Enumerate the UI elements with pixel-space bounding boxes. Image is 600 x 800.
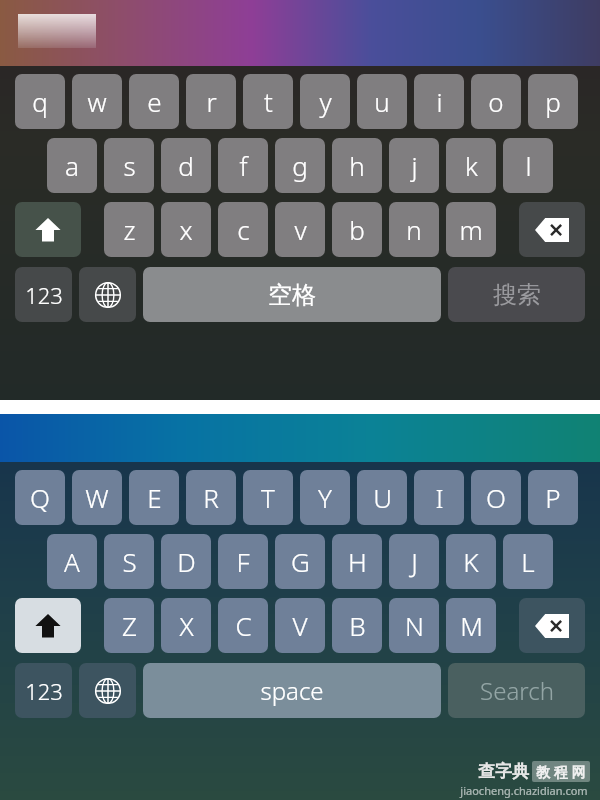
button[interactable]: u [357, 74, 407, 129]
button[interactable]: Delete [519, 202, 585, 257]
staticText: P [545, 480, 561, 515]
staticText: p [545, 84, 561, 119]
staticText: 搜索 [493, 280, 541, 310]
button[interactable]: A [47, 534, 97, 589]
staticText: s [123, 148, 136, 183]
staticText: d [178, 148, 194, 183]
staticText: J [411, 544, 418, 579]
button[interactable]: p [528, 74, 578, 129]
button[interactable]: N [389, 598, 439, 653]
button[interactable]: Shift [15, 202, 81, 257]
button[interactable]: z [104, 202, 154, 257]
staticText: f [239, 148, 248, 183]
button[interactable]: t [243, 74, 293, 129]
button[interactable]: r [186, 74, 236, 129]
staticText: Q [30, 480, 50, 515]
staticText: k [465, 148, 478, 183]
button[interactable]: s [104, 138, 154, 193]
button[interactable]: O [471, 470, 521, 525]
button[interactable]: I [414, 470, 464, 525]
staticText: j [411, 148, 418, 183]
staticText: H [348, 544, 367, 579]
button[interactable]: C [218, 598, 268, 653]
staticText: F [236, 544, 250, 579]
button[interactable]: S [104, 534, 154, 589]
button[interactable]: k [446, 138, 496, 193]
button[interactable]: i [414, 74, 464, 129]
staticText: K [463, 544, 479, 579]
button[interactable]: 123 [15, 267, 72, 322]
button[interactable]: y [300, 74, 350, 129]
button[interactable]: 空格 [143, 267, 441, 322]
button[interactable]: K [446, 534, 496, 589]
staticText: h [349, 148, 365, 183]
button[interactable]: space [143, 663, 441, 718]
staticText: 教 程 网 [536, 762, 586, 781]
button[interactable]: Y [300, 470, 350, 525]
button[interactable]: 123 [15, 663, 72, 718]
button[interactable]: V [275, 598, 325, 653]
button[interactable]: d [161, 138, 211, 193]
staticText: 空格 [268, 280, 316, 310]
button[interactable]: U [357, 470, 407, 525]
button[interactable]: n [389, 202, 439, 257]
staticText: E [147, 480, 162, 515]
button[interactable]: H [332, 534, 382, 589]
button[interactable]: B [332, 598, 382, 653]
button[interactable]: D [161, 534, 211, 589]
button[interactable]: Switch keyboard [79, 267, 136, 322]
staticText: a [65, 148, 79, 183]
staticText: space [260, 674, 324, 707]
button[interactable]: x [161, 202, 211, 257]
button[interactable]: f [218, 138, 268, 193]
staticText: L [521, 544, 535, 579]
button[interactable]: Shift [15, 598, 81, 653]
button[interactable]: 搜索 [448, 267, 585, 322]
button[interactable]: Search [448, 663, 585, 718]
button[interactable]: b [332, 202, 382, 257]
button[interactable]: h [332, 138, 382, 193]
staticText: e [147, 84, 162, 119]
button[interactable]: m [446, 202, 496, 257]
staticText: w [87, 84, 107, 119]
button[interactable]: G [275, 534, 325, 589]
staticText: M [460, 608, 483, 643]
staticText: jiaocheng.chazidian.com [460, 783, 588, 798]
staticText: l [525, 148, 532, 183]
button[interactable]: Delete [519, 598, 585, 653]
staticText: q [32, 84, 48, 119]
button[interactable]: Z [104, 598, 154, 653]
button[interactable]: X [161, 598, 211, 653]
button[interactable]: a [47, 138, 97, 193]
staticText: T [261, 480, 275, 515]
button[interactable]: T [243, 470, 293, 525]
button[interactable]: c [218, 202, 268, 257]
staticText: y [319, 84, 332, 119]
button[interactable]: J [389, 534, 439, 589]
button[interactable]: L [503, 534, 553, 589]
button[interactable]: j [389, 138, 439, 193]
staticText: z [123, 212, 136, 247]
staticText: t [264, 84, 273, 119]
button[interactable]: l [503, 138, 553, 193]
button[interactable]: o [471, 74, 521, 129]
staticText: o [488, 84, 504, 119]
staticText: n [406, 212, 422, 247]
button[interactable]: v [275, 202, 325, 257]
button[interactable]: M [446, 598, 496, 653]
button[interactable]: W [72, 470, 122, 525]
button[interactable]: P [528, 470, 578, 525]
staticText: D [177, 544, 196, 579]
button[interactable]: w [72, 74, 122, 129]
staticText: i [436, 84, 443, 119]
button[interactable]: q [15, 74, 65, 129]
button[interactable]: F [218, 534, 268, 589]
button[interactable]: E [129, 470, 179, 525]
button[interactable]: Q [15, 470, 65, 525]
button[interactable]: g [275, 138, 325, 193]
staticText: Search [480, 674, 554, 707]
button[interactable]: R [186, 470, 236, 525]
button[interactable]: e [129, 74, 179, 129]
staticText: X [179, 608, 194, 643]
button[interactable]: Switch keyboard [79, 663, 136, 718]
